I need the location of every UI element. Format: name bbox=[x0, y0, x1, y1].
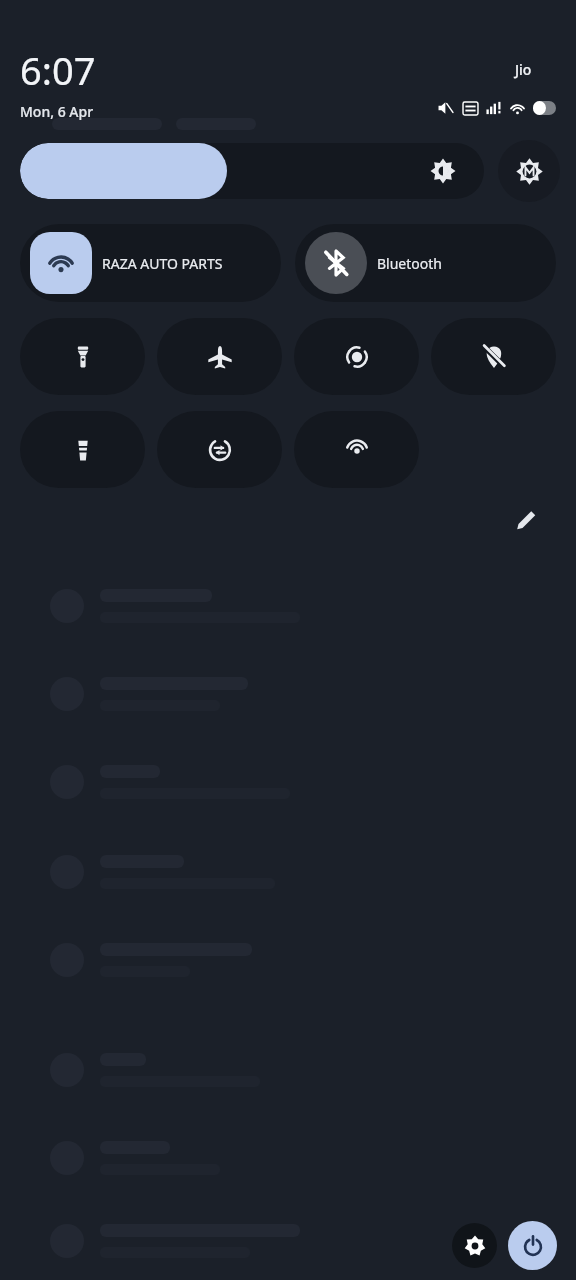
staticText: RAZA AUTO PARTS bbox=[102, 254, 223, 273]
button[interactable]: Bluetooth bbox=[295, 224, 556, 302]
staticText: Mon, 6 Apr bbox=[20, 102, 94, 121]
button[interactable]: Flashlight bbox=[20, 318, 145, 395]
button[interactable]: Hotspot bbox=[294, 411, 419, 488]
button[interactable]: Auto brightness mode bbox=[498, 140, 560, 202]
button[interactable]: Data saver bbox=[157, 411, 282, 488]
button[interactable]: Brightness bbox=[20, 143, 484, 199]
staticText: Bluetooth bbox=[377, 254, 442, 273]
button[interactable]: Location off bbox=[431, 318, 556, 395]
staticText: 6:07 bbox=[20, 44, 96, 96]
button[interactable]: Settings bbox=[452, 1223, 497, 1268]
button[interactable]: Edit tiles bbox=[508, 502, 544, 538]
button[interactable]: Screen record bbox=[294, 318, 419, 395]
button[interactable]: RAZA AUTO PARTS bbox=[20, 224, 281, 302]
button[interactable]: Airplane mode bbox=[157, 318, 282, 395]
button[interactable]: Power bbox=[508, 1221, 557, 1270]
button[interactable]: Caffeine bbox=[20, 411, 145, 488]
staticText: Jio bbox=[515, 60, 532, 79]
